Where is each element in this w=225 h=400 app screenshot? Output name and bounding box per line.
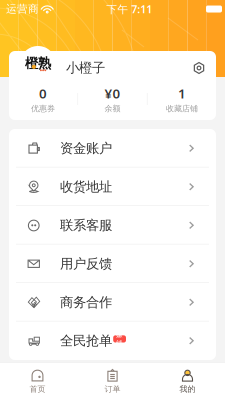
staticText: 用户反馈: [60, 256, 112, 272]
staticText: 我的: [179, 384, 195, 394]
staticText: 联系客服: [60, 217, 112, 233]
staticText: 运营商: [6, 2, 39, 15]
staticText: 1: [178, 84, 186, 102]
button[interactable]: 收货地址: [9, 167, 216, 206]
staticText: 橙熟: [25, 55, 51, 72]
button[interactable]: 我的: [150, 363, 225, 400]
staticText: 赚钱: [116, 331, 123, 347]
button[interactable]: 商务合作: [9, 283, 216, 321]
staticText: 下午 7:11: [106, 2, 152, 16]
staticText: 订单: [104, 384, 120, 394]
button[interactable]: 资金账户: [9, 129, 216, 167]
staticText: 商务合作: [60, 294, 112, 310]
staticText: 余额: [104, 104, 120, 113]
staticText: 收货地址: [60, 179, 112, 195]
staticText: 首页: [29, 384, 45, 394]
button[interactable]: 联系客服: [9, 206, 216, 244]
button[interactable]: 全民抢单: [9, 321, 216, 360]
staticText: 优惠券: [31, 104, 55, 113]
staticText: 小橙子: [66, 59, 105, 76]
staticText: 0: [39, 84, 47, 102]
button[interactable]: 用户反馈: [9, 244, 216, 283]
staticText: 收藏店铺: [166, 104, 198, 113]
button[interactable]: 订单: [75, 363, 150, 400]
staticText: 全民抢单: [60, 333, 112, 349]
staticText: ¥0: [104, 84, 120, 102]
button[interactable]: 设置: [189, 58, 209, 78]
button[interactable]: 首页: [0, 363, 75, 400]
staticText: 资金账户: [60, 140, 112, 156]
